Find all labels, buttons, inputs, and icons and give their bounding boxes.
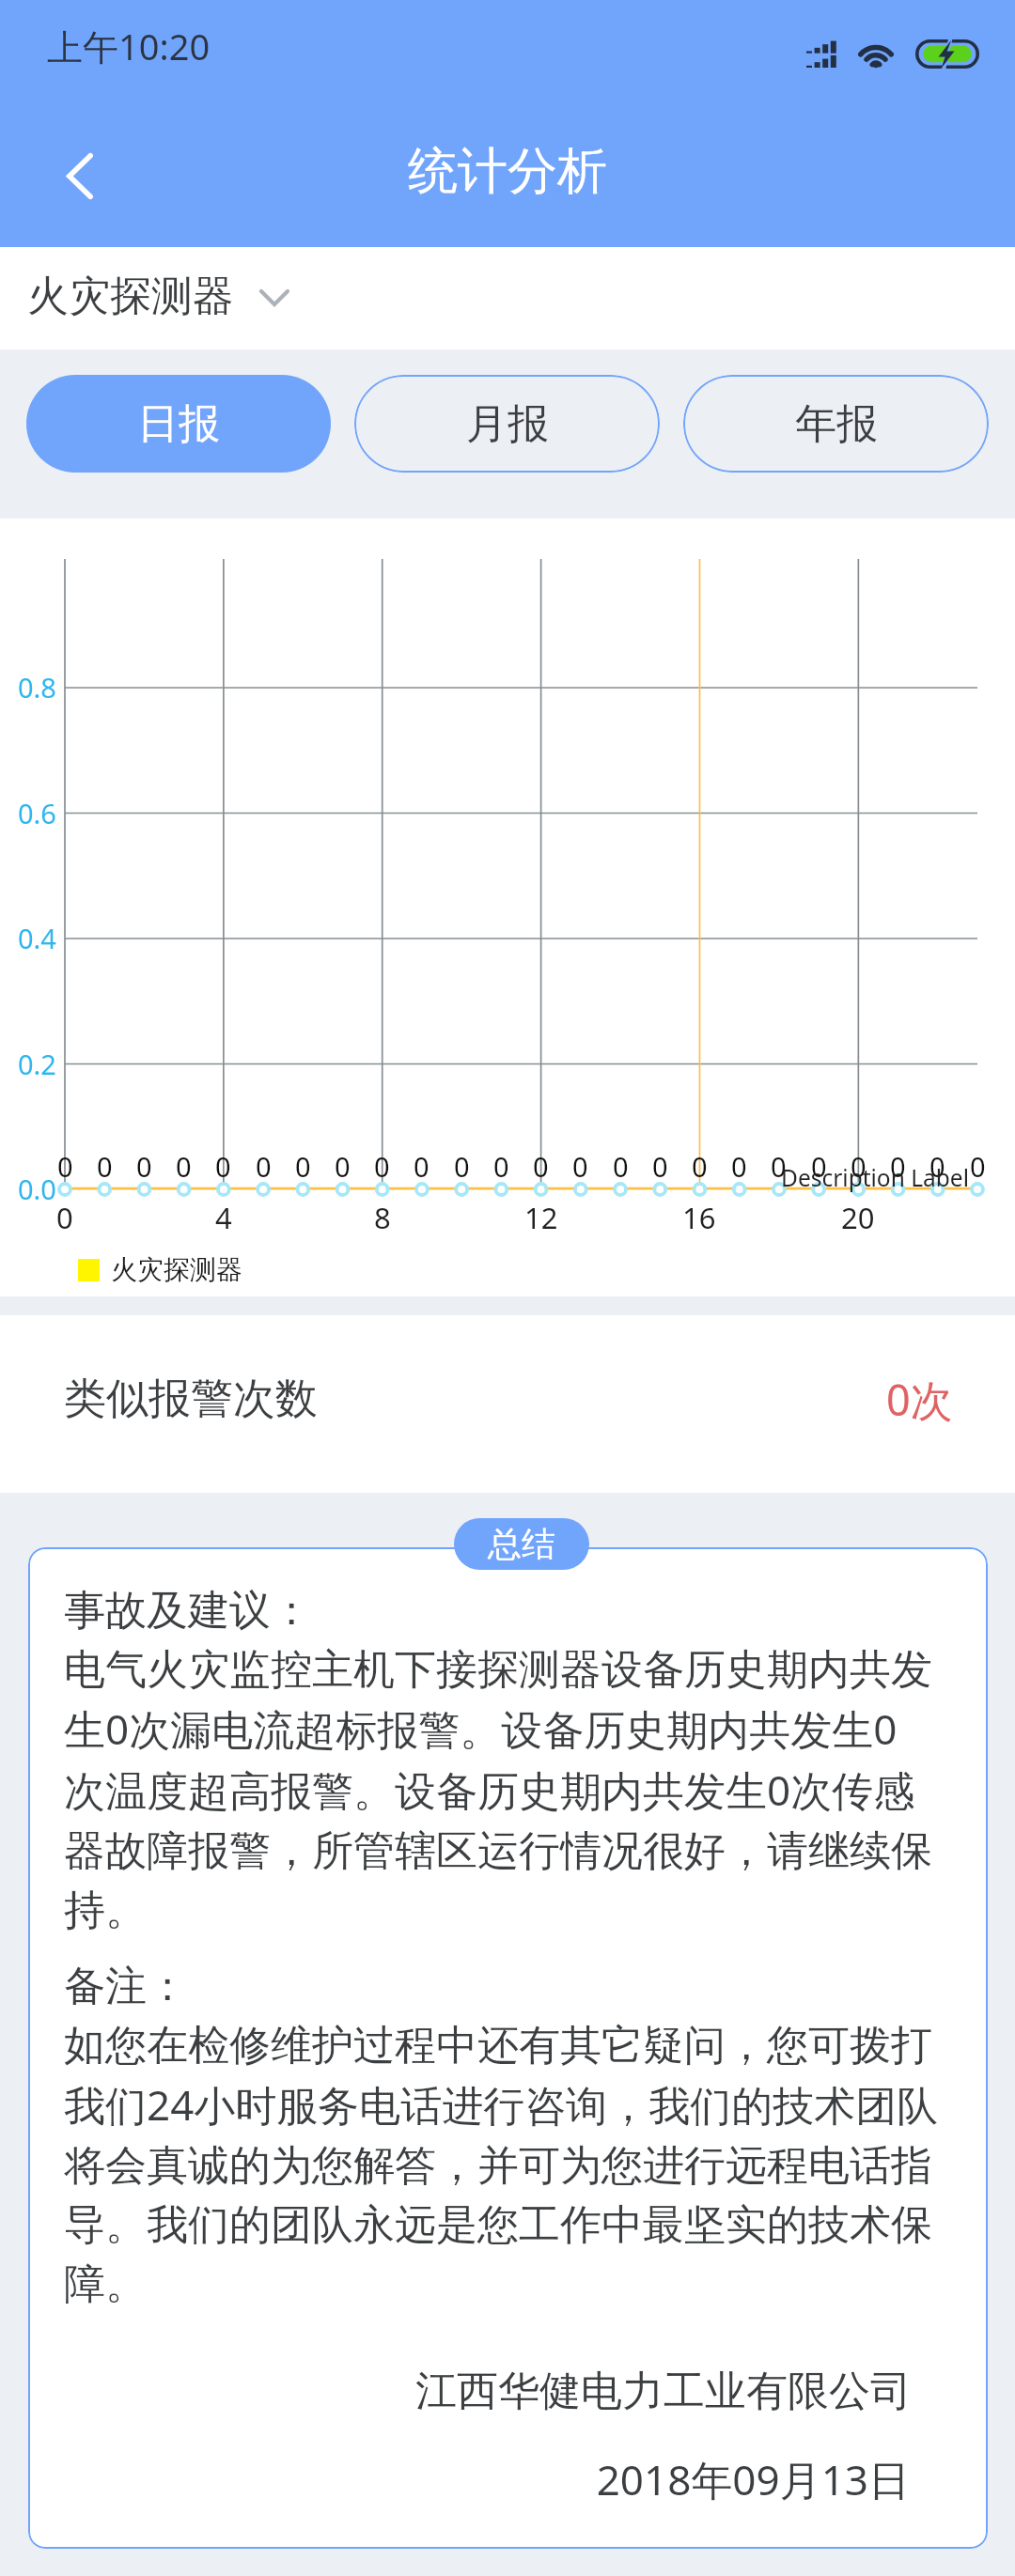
staticText: 类似报警次数	[64, 1373, 318, 1426]
staticText: 0	[493, 1148, 509, 1185]
button[interactable]: 年报	[683, 375, 989, 473]
staticText: 8	[374, 1198, 391, 1237]
staticText: 4	[215, 1198, 232, 1237]
staticText: 0.8	[18, 669, 56, 706]
button[interactable]: 总结	[454, 1518, 589, 1570]
staticText: 0	[731, 1148, 747, 1185]
staticText: 0	[335, 1148, 351, 1185]
staticText: 0	[572, 1148, 588, 1185]
staticText: 日报	[137, 398, 220, 450]
staticText: 0次	[886, 1371, 953, 1428]
staticText: 火灾探测器	[27, 271, 234, 322]
staticText: 0	[136, 1148, 152, 1185]
staticText: 0	[613, 1148, 629, 1185]
staticText: 0	[970, 1148, 986, 1185]
staticText: 0.4	[18, 920, 56, 956]
staticText: 备注： 如您在检修维护过程中还有其它疑问，您可拨打 我们24小时服务电话进行咨询…	[64, 1961, 939, 2310]
staticText: 16	[682, 1198, 716, 1237]
button[interactable]: 类似报警次数	[0, 1315, 1015, 1493]
staticText: 0	[454, 1148, 470, 1185]
staticText: 0.2	[18, 1046, 56, 1082]
staticText: 上午10:20	[47, 22, 211, 70]
staticText: 0	[533, 1148, 549, 1185]
staticText: 0.0	[18, 1171, 56, 1207]
staticText: 0	[851, 1148, 867, 1185]
staticText: 火灾探测器	[111, 1253, 242, 1286]
staticText: 0	[652, 1148, 668, 1185]
staticText: 0	[295, 1148, 311, 1185]
staticText: 0	[256, 1148, 272, 1185]
staticText: 0	[215, 1148, 231, 1185]
staticText: 12	[524, 1198, 558, 1237]
staticText: 0	[97, 1148, 113, 1185]
staticText: 20	[841, 1198, 875, 1237]
staticText: 0	[811, 1148, 827, 1185]
staticText: 0	[414, 1148, 429, 1185]
staticText: 年报	[795, 398, 878, 450]
button[interactable]: 月报	[354, 375, 660, 473]
staticText: 江西华健电力工业有限公司	[64, 2366, 912, 2417]
button[interactable]: 火灾探测器	[0, 247, 312, 349]
staticText: 0	[771, 1148, 787, 1185]
staticText: 0.6	[18, 795, 56, 831]
button[interactable]: Back	[26, 105, 132, 233]
staticText: 0	[56, 1198, 73, 1237]
staticText: 2018年09月13日	[64, 2451, 910, 2506]
staticText: 0	[176, 1148, 192, 1185]
staticText: 0	[374, 1148, 390, 1185]
staticText: 0	[890, 1148, 906, 1185]
button[interactable]: 日报	[26, 375, 331, 473]
staticText: 事故及建议： 电气火灾监控主机下接探测器设备历史期内共发 生0次漏电流超标报警。…	[64, 1585, 932, 1936]
staticText: Description Label	[781, 1162, 969, 1193]
staticText: 0	[692, 1148, 708, 1185]
staticText: 0	[57, 1148, 73, 1185]
staticText: 统计分析	[408, 140, 607, 203]
staticText: 0	[929, 1148, 945, 1185]
staticText: 月报	[466, 398, 549, 450]
staticText: 总结	[488, 1523, 555, 1565]
